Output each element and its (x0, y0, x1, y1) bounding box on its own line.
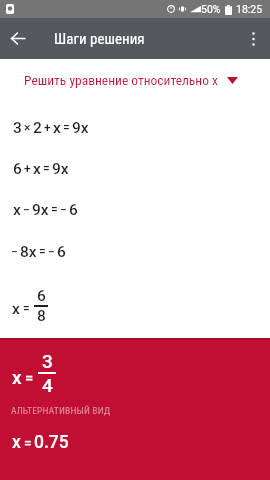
staticText: = (39, 245, 46, 259)
staticText: АЛЬТЕРНАТИВНЫЙ ВИД (11, 405, 111, 416)
staticText: 3 (13, 119, 22, 137)
staticText: − (60, 203, 67, 217)
staticText: 4 (42, 374, 53, 396)
staticText: 0.75 (34, 432, 69, 453)
button[interactable]: More options (236, 18, 270, 59)
staticText: 6 (37, 287, 46, 305)
staticText: 3 (42, 350, 53, 372)
staticText: x (12, 300, 20, 318)
staticText: x (12, 366, 22, 388)
staticText: − (11, 245, 18, 259)
staticText: 6 (69, 201, 78, 219)
staticText: = (23, 302, 30, 316)
staticText: x (33, 160, 41, 178)
staticText: 8x (20, 243, 37, 261)
staticText: 9x (32, 201, 49, 219)
staticText: = (63, 121, 70, 135)
staticText: + (44, 121, 51, 135)
staticText: Шаги решения (54, 30, 145, 48)
staticText: = (25, 369, 34, 386)
staticText: + (24, 162, 31, 176)
button[interactable]: Back (0, 18, 36, 59)
button[interactable]: Решить уравнение относительно x (0, 66, 270, 94)
staticText: − (48, 245, 55, 259)
staticText: x (12, 432, 21, 453)
staticText: = (43, 162, 50, 176)
staticText: × (24, 121, 31, 135)
staticText: 2 (33, 119, 42, 137)
staticText: 9x (72, 119, 89, 137)
staticText: 50% (201, 3, 221, 15)
staticText: = (24, 435, 32, 451)
staticText: − (23, 203, 30, 217)
staticText: 18:25 (236, 3, 263, 15)
staticText: 6 (13, 160, 22, 178)
staticText: x (53, 119, 61, 137)
staticText: 8 (37, 307, 46, 325)
staticText: x (13, 201, 21, 219)
staticText: 9x (52, 160, 69, 178)
staticText: 6 (57, 243, 66, 261)
staticText: Решить уравнение относительно x (24, 72, 219, 88)
staticText: = (51, 203, 58, 217)
